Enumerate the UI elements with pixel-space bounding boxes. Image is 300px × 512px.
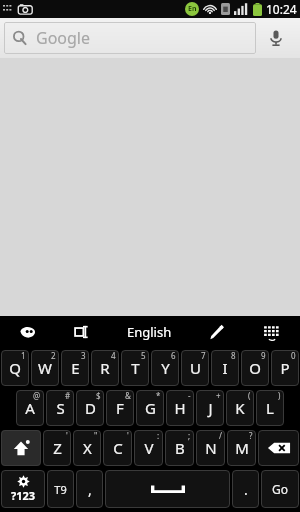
button[interactable]: Z bbox=[43, 430, 71, 466]
button[interactable]: Google bbox=[4, 22, 256, 54]
staticText: H bbox=[174, 398, 186, 418]
button[interactable]: T bbox=[121, 350, 149, 386]
staticText: 2 bbox=[51, 350, 56, 361]
button[interactable]: L bbox=[256, 390, 284, 426]
staticText: X bbox=[83, 438, 92, 458]
button[interactable]: . bbox=[232, 470, 259, 508]
button[interactable]: S bbox=[46, 390, 74, 426]
staticText: 10:24 bbox=[266, 1, 297, 17]
button[interactable]: Shift bbox=[1, 430, 41, 466]
button[interactable]: H bbox=[166, 390, 194, 426]
button[interactable]: P bbox=[271, 350, 299, 386]
button[interactable]: E bbox=[61, 350, 89, 386]
staticText: . bbox=[244, 480, 248, 499]
button[interactable]: Go bbox=[261, 470, 299, 508]
staticText: ( bbox=[248, 390, 251, 401]
button[interactable]: N bbox=[196, 430, 225, 466]
staticText: P bbox=[280, 358, 290, 378]
button[interactable]: O bbox=[241, 350, 269, 386]
staticText: # bbox=[65, 390, 71, 401]
staticText: U bbox=[190, 358, 201, 378]
button[interactable]: U bbox=[181, 350, 209, 386]
staticText: E bbox=[71, 358, 80, 378]
button[interactable]: Y bbox=[151, 350, 179, 386]
staticText: Google bbox=[36, 27, 91, 49]
button[interactable]: V bbox=[134, 430, 163, 466]
staticText: - bbox=[188, 390, 191, 401]
staticText: V bbox=[144, 438, 154, 458]
staticText: ) bbox=[278, 390, 281, 401]
staticText: F bbox=[116, 398, 124, 418]
staticText: 0 bbox=[291, 350, 296, 361]
button[interactable]: , bbox=[76, 470, 103, 508]
button[interactable]: C bbox=[103, 430, 132, 466]
button[interactable]: F bbox=[106, 390, 134, 426]
staticText: L bbox=[266, 398, 274, 418]
staticText: ? bbox=[249, 430, 253, 441]
staticText: En bbox=[188, 4, 197, 14]
staticText: ; bbox=[188, 430, 191, 441]
button[interactable]: Settings and symbols bbox=[1, 470, 45, 508]
button[interactable]: G bbox=[136, 390, 164, 426]
staticText: K bbox=[235, 398, 245, 418]
staticText: J bbox=[208, 398, 213, 418]
button[interactable]: A bbox=[16, 390, 44, 426]
staticText: 6 bbox=[171, 350, 176, 361]
button[interactable]: J bbox=[196, 390, 224, 426]
staticText: B bbox=[175, 438, 185, 458]
button[interactable]: W bbox=[31, 350, 59, 386]
button[interactable]: Backspace bbox=[258, 430, 299, 466]
staticText: 4 bbox=[111, 350, 116, 361]
button[interactable]: X bbox=[73, 430, 101, 466]
button[interactable]: Voice search bbox=[256, 22, 296, 54]
button[interactable]: M bbox=[227, 430, 256, 466]
staticText: Go bbox=[272, 481, 288, 497]
staticText: $ bbox=[96, 390, 101, 401]
staticText: + bbox=[216, 390, 221, 401]
staticText: ' bbox=[127, 430, 129, 441]
button[interactable]: Q bbox=[1, 350, 29, 386]
button[interactable]: T9 bbox=[47, 470, 74, 508]
button[interactable]: R bbox=[91, 350, 119, 386]
button[interactable]: I bbox=[211, 350, 239, 386]
staticText: 7 bbox=[201, 350, 206, 361]
staticText: G bbox=[145, 398, 156, 418]
staticText: R bbox=[100, 358, 110, 378]
button[interactable]: B bbox=[165, 430, 194, 466]
button[interactable]: Space bbox=[105, 470, 230, 508]
staticText: M bbox=[235, 438, 249, 458]
staticText: A bbox=[25, 398, 35, 418]
staticText: : bbox=[157, 430, 160, 441]
button[interactable]: Switch input method bbox=[55, 316, 110, 348]
staticText: ' bbox=[66, 430, 68, 441]
staticText: C bbox=[113, 438, 123, 458]
staticText: 8 bbox=[231, 350, 236, 361]
staticText: & bbox=[125, 390, 131, 401]
staticText: W bbox=[38, 358, 52, 378]
staticText: English bbox=[127, 323, 172, 341]
staticText: 9 bbox=[261, 350, 266, 361]
staticText: I bbox=[222, 358, 228, 378]
staticText: D bbox=[85, 398, 96, 418]
button[interactable]: K bbox=[226, 390, 254, 426]
staticText: 1 bbox=[21, 350, 26, 361]
staticText: T bbox=[131, 358, 140, 378]
staticText: 5 bbox=[141, 350, 146, 361]
staticText: / bbox=[219, 430, 222, 441]
button[interactable]: Keyboard layout bbox=[244, 316, 300, 348]
button[interactable]: Handwriting bbox=[188, 316, 244, 348]
staticText: Q bbox=[9, 358, 21, 378]
staticText: N bbox=[205, 438, 217, 458]
staticText: ?123 bbox=[11, 488, 36, 503]
staticText: T9 bbox=[54, 482, 67, 497]
button[interactable]: D bbox=[76, 390, 104, 426]
staticText: * bbox=[156, 390, 161, 401]
staticText: S bbox=[56, 398, 65, 418]
staticText: Y bbox=[161, 358, 170, 378]
button[interactable]: Emoticons bbox=[0, 316, 55, 348]
staticText: O bbox=[249, 358, 261, 378]
staticText: 3 bbox=[81, 350, 86, 361]
button[interactable]: English bbox=[110, 316, 188, 348]
staticText: " bbox=[94, 430, 98, 441]
staticText: Z bbox=[53, 438, 62, 458]
